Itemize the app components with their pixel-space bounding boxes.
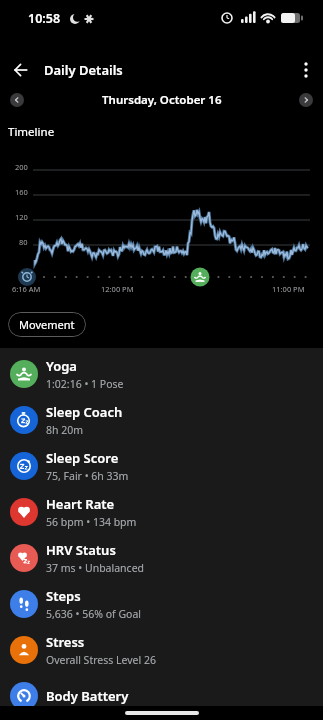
staticText: Timeline <box>8 124 55 140</box>
staticText: Stress <box>46 633 85 651</box>
button[interactable]: Movement <box>8 312 86 337</box>
staticText: Steps <box>46 587 81 605</box>
staticText: HRV Status <box>46 541 116 559</box>
button[interactable]: Sleep Score <box>0 443 323 489</box>
button[interactable]: Body Battery <box>0 673 323 719</box>
staticText: Heart Rate <box>46 495 115 513</box>
staticText: Yoga <box>46 357 77 375</box>
button[interactable]: Heart Rate <box>0 489 323 535</box>
button[interactable]: Yoga <box>0 351 323 397</box>
button[interactable] <box>299 93 313 107</box>
button[interactable]: Steps <box>0 581 323 627</box>
staticText: Body Battery <box>46 687 129 705</box>
staticText: 8h 20m <box>46 423 84 437</box>
staticText: 160 <box>15 187 28 197</box>
staticText: 10:58 <box>28 10 61 27</box>
button[interactable]: HRV Status <box>0 535 323 581</box>
staticText: 75, Fair • 6h 33m <box>46 469 129 483</box>
staticText: 5,636 • 56% of Goal <box>46 607 142 621</box>
staticText: 56 bpm • 134 bpm <box>46 515 137 529</box>
staticText: Sleep Score <box>46 449 119 467</box>
button[interactable] <box>10 93 24 107</box>
staticText: Thursday, October 16 <box>102 92 222 108</box>
button[interactable]: Sleep Coach <box>0 397 323 443</box>
staticText: 1:02:16 • 1 Pose <box>46 377 124 391</box>
staticText: 12:00 PM <box>101 284 134 294</box>
staticText: 37 ms • Unbalanced <box>46 561 145 575</box>
staticText: Sleep Coach <box>46 403 123 421</box>
button[interactable]: Stress <box>0 627 323 673</box>
button[interactable] <box>8 57 34 83</box>
staticText: 6:16 AM <box>12 284 41 294</box>
staticText: 80 <box>19 237 28 247</box>
button[interactable] <box>293 57 319 83</box>
staticText: Daily Details <box>44 61 123 79</box>
staticText: 200 <box>15 162 28 172</box>
staticText: 11:00 PM <box>272 284 305 294</box>
staticText: Movement <box>19 317 75 332</box>
staticText: 120 <box>15 212 28 222</box>
staticText: Overall Stress Level 26 <box>46 653 156 667</box>
